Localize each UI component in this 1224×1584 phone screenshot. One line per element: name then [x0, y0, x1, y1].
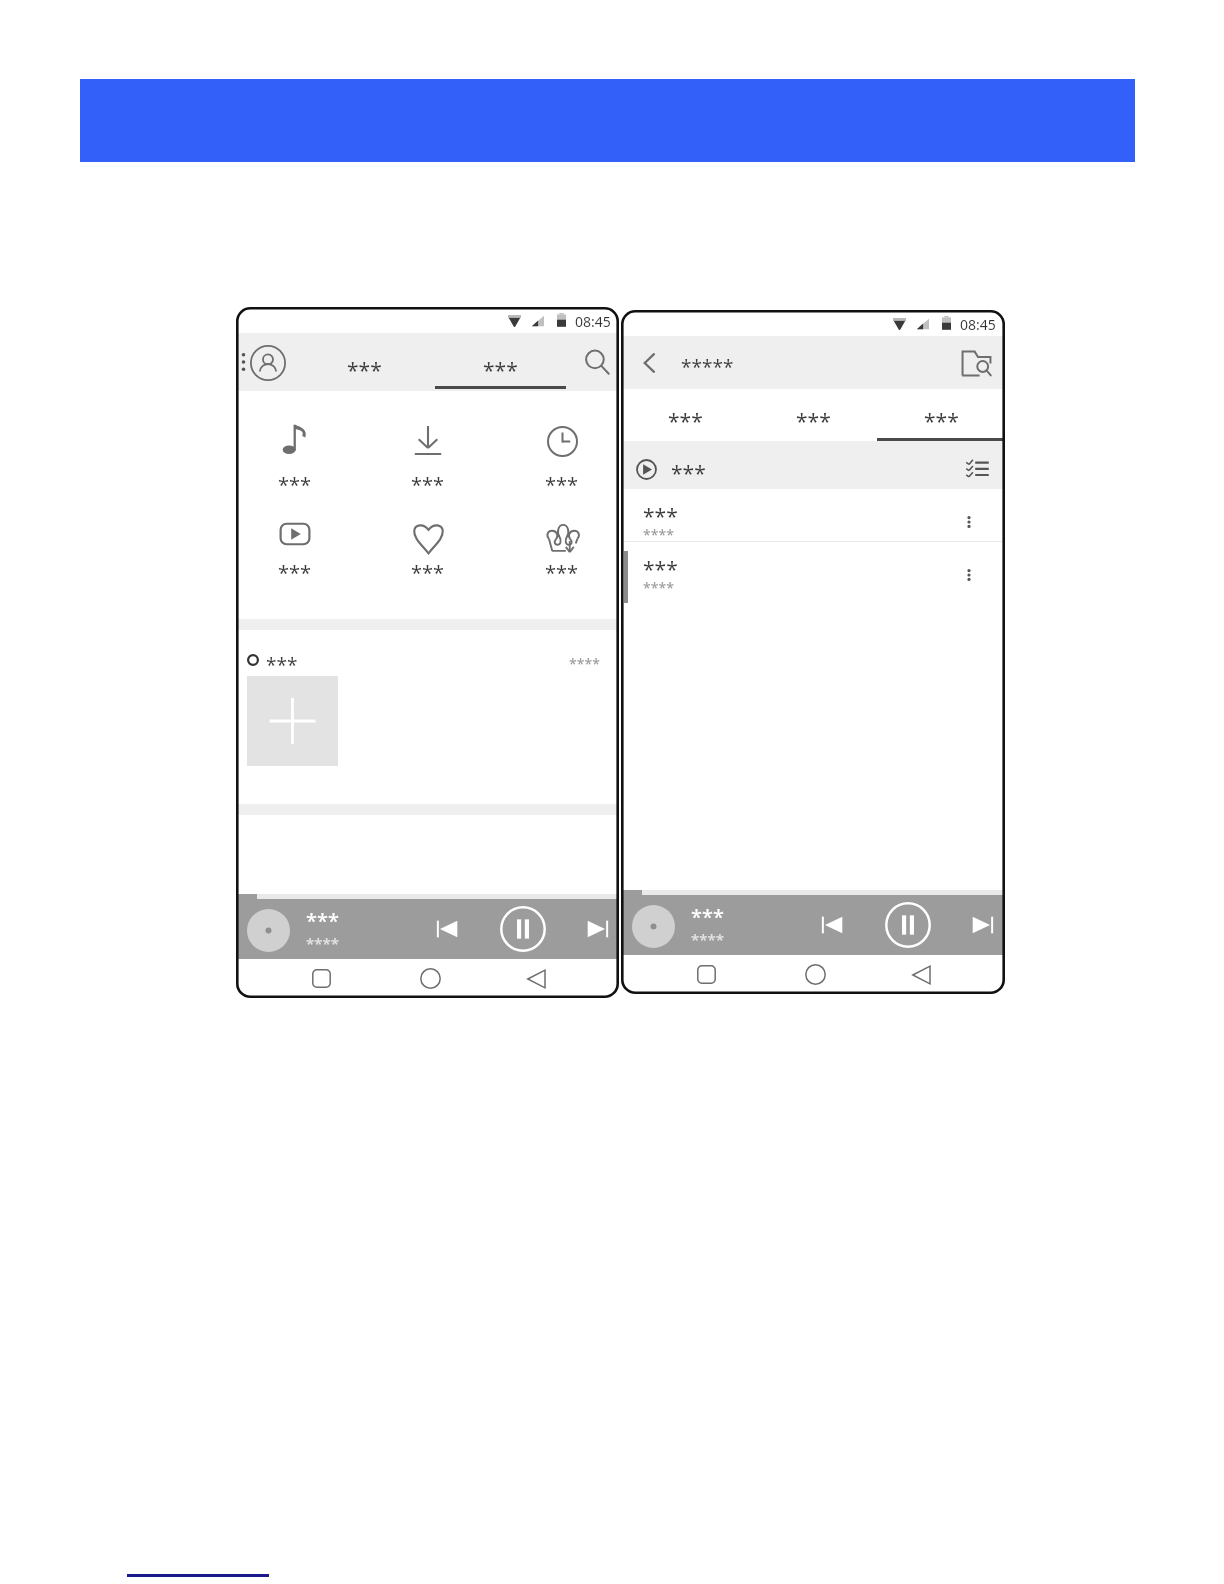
staticText: **** [643, 525, 674, 544]
button[interactable]: Playlist [958, 450, 996, 488]
button[interactable]: Recents [289, 959, 353, 998]
button[interactable]: Home [783, 955, 847, 994]
staticText: **** [569, 654, 600, 673]
button[interactable]: Add [247, 676, 338, 766]
staticText: *** [924, 407, 959, 436]
button[interactable]: *** [314, 333, 414, 389]
staticText: *** [278, 471, 312, 497]
button[interactable]: Search folder [952, 339, 1000, 387]
staticText: ***** [681, 354, 734, 380]
staticText: *** [671, 459, 706, 488]
staticText: *** [483, 356, 518, 385]
button[interactable]: Search [574, 339, 619, 385]
staticText: *** [691, 903, 725, 930]
button[interactable]: *** [255, 508, 335, 572]
button[interactable]: *** [621, 489, 1005, 541]
button[interactable]: Pause [500, 906, 546, 952]
staticText: 08:45 [575, 312, 611, 331]
staticText: **** [691, 929, 725, 949]
button[interactable]: *** [621, 441, 1005, 489]
staticText: *** [306, 907, 340, 934]
staticText: *** [266, 652, 298, 674]
staticText: *** [545, 559, 579, 585]
button[interactable]: *** [388, 415, 468, 479]
button[interactable]: More options [949, 548, 989, 588]
button[interactable]: Account [248, 343, 288, 383]
button[interactable]: *** [749, 389, 877, 441]
staticText: **** [643, 578, 674, 597]
staticText: *** [278, 559, 312, 585]
button[interactable]: Back [631, 344, 669, 382]
staticText: *** [411, 471, 445, 497]
button[interactable]: Previous [425, 907, 469, 951]
button[interactable]: Previous [810, 903, 854, 947]
staticText: *** [347, 356, 382, 385]
staticText: *** [545, 471, 579, 497]
staticText: *** [643, 555, 678, 584]
staticText: *** [643, 502, 678, 531]
button[interactable]: *** [621, 389, 749, 441]
button[interactable]: *** [522, 508, 602, 572]
button[interactable]: Next [961, 903, 1005, 947]
button[interactable]: *** [621, 542, 1005, 594]
button[interactable]: *** [522, 415, 602, 479]
staticText: 08:45 [960, 315, 996, 334]
button[interactable]: Home [398, 959, 462, 998]
button[interactable]: Back [505, 959, 569, 998]
staticText: *** [411, 559, 445, 585]
staticText: *** [668, 407, 703, 436]
staticText: **** [306, 933, 340, 953]
staticText: *** [796, 407, 831, 436]
button[interactable]: Next [576, 907, 619, 951]
button[interactable]: Recents [674, 955, 738, 994]
button[interactable]: Back [890, 955, 954, 994]
button[interactable]: *** [255, 415, 335, 479]
button[interactable]: Pause [885, 902, 931, 948]
button[interactable]: *** [435, 333, 566, 389]
button[interactable]: *** [388, 508, 468, 572]
button[interactable]: More options [949, 495, 989, 535]
button[interactable]: *** [877, 389, 1005, 441]
